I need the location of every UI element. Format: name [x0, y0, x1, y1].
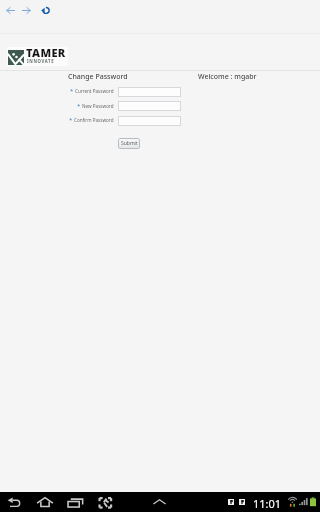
staticText: * [77, 102, 81, 110]
staticText: TAMER [26, 45, 66, 60]
button[interactable]: Forward [19, 3, 33, 17]
staticText: INNOVATE [27, 58, 55, 64]
button[interactable]: Reload [38, 3, 52, 17]
button[interactable]: Back [3, 3, 17, 17]
staticText: Change Password [68, 72, 128, 82]
button[interactable]: Submit [118, 138, 140, 149]
button[interactable] [118, 87, 181, 97]
button[interactable]: Back [7, 496, 22, 509]
staticText: Welcome : mgabr [198, 72, 257, 82]
staticText: 11:01 [253, 496, 282, 511]
button[interactable]: Expand status bar [151, 497, 168, 507]
staticText: * [70, 87, 74, 95]
button[interactable] [118, 116, 181, 126]
button[interactable]: Home [36, 496, 54, 508]
button[interactable] [118, 101, 181, 111]
staticText: Current Password [75, 88, 114, 94]
button[interactable]: Screenshot [98, 496, 115, 509]
staticText: New Password [82, 103, 114, 109]
button[interactable]: Recent apps [67, 496, 84, 508]
staticText: * [69, 116, 73, 124]
staticText: Confirm Password [74, 117, 114, 123]
staticText: Submit [121, 140, 138, 147]
